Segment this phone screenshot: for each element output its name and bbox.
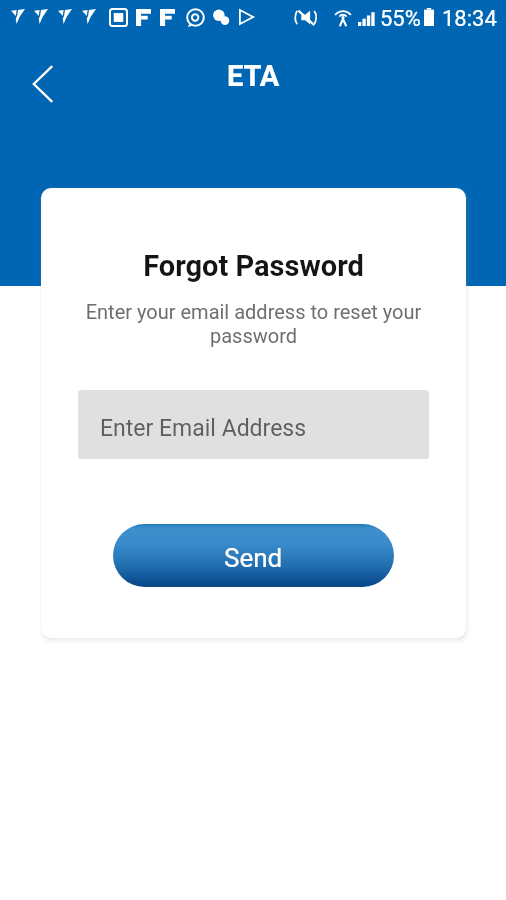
staticText: Send (224, 543, 283, 573)
staticText: 55% (380, 6, 421, 32)
staticText: Forgot Password (41, 249, 466, 283)
staticText: ETA (227, 59, 280, 93)
staticText: Enter your email address to reset your p… (83, 300, 424, 348)
staticText: 18:34 (442, 6, 497, 32)
button[interactable]: Send (113, 524, 394, 587)
button[interactable]: Enter Email Address (78, 390, 429, 459)
button[interactable]: Back (16, 57, 70, 111)
staticText: Enter Email Address (100, 415, 307, 442)
